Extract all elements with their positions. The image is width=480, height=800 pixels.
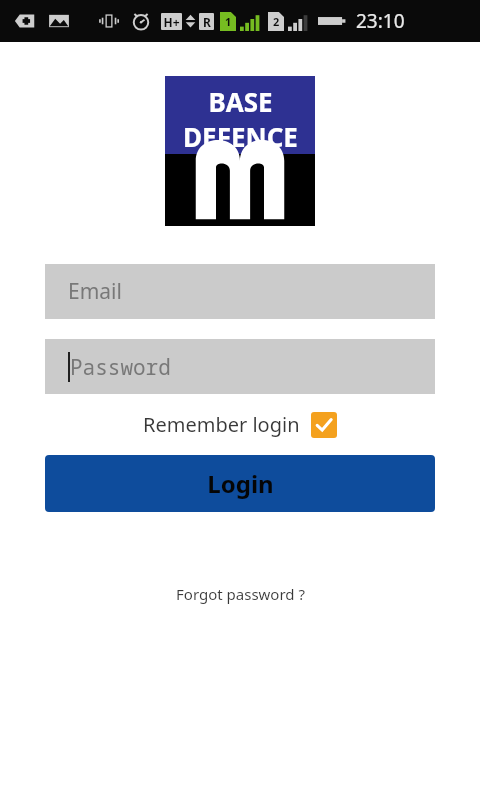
button[interactable]: Forgot password ? [0, 584, 480, 604]
other: Remember login checkbox, checked [311, 412, 337, 438]
staticText: 1 [225, 14, 232, 29]
staticText: Remember login [143, 411, 300, 438]
staticText: Email [68, 277, 122, 306]
staticText: H+ [163, 14, 180, 30]
button[interactable]: Password [45, 339, 435, 394]
staticText: 2 [273, 14, 280, 29]
button[interactable]: Login [45, 455, 435, 512]
staticText: Login [207, 467, 274, 500]
staticText: R [203, 14, 211, 30]
staticText: BASE [208, 84, 273, 119]
staticText: 23:10 [356, 8, 405, 34]
staticText: DEFENCE [183, 119, 298, 154]
button[interactable]: Remember login [143, 411, 337, 438]
staticText: Password [70, 353, 171, 382]
staticText: Forgot password ? [176, 584, 305, 604]
button[interactable]: Email [45, 264, 435, 319]
